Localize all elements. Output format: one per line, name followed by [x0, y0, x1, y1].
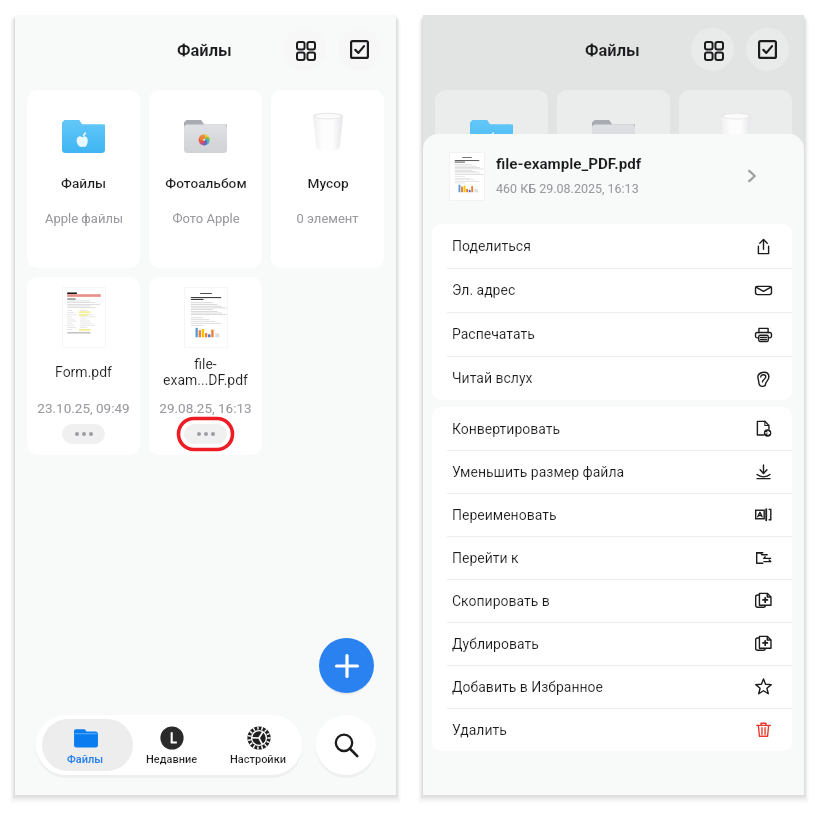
staticText: Эл. адрес: [452, 282, 516, 298]
button[interactable]: Добавить в Избранное: [432, 665, 792, 708]
button[interactable]: Поделиться: [432, 224, 792, 268]
staticText: Файлы: [67, 753, 104, 766]
staticText: 460 КБ 29.08.2025, 16:13: [496, 181, 639, 196]
button[interactable]: Дублировать: [432, 622, 792, 665]
staticText: Скопировать в: [452, 593, 550, 609]
button[interactable]: Конвертировать: [432, 407, 792, 450]
staticText: Фотоальбом: [165, 175, 247, 191]
staticText: Файлы: [177, 41, 232, 60]
button[interactable]: Select all: [338, 28, 381, 71]
staticText: Дублировать: [452, 636, 539, 652]
staticText: Мусор: [307, 175, 349, 191]
staticText: 29.08.25, 16:13: [159, 400, 252, 416]
button[interactable]: More options: [184, 424, 227, 444]
button[interactable]: Удалить: [432, 708, 792, 751]
button[interactable]: Grid view: [691, 28, 734, 71]
staticText: Переименовать: [452, 507, 557, 523]
button[interactable]: Grid view: [283, 28, 326, 71]
button[interactable]: Скопировать в: [432, 579, 792, 622]
staticText: 0 элемент: [296, 211, 359, 226]
staticText: Apple файлы: [45, 211, 123, 226]
button[interactable]: Add: [319, 638, 374, 693]
staticText: Читай вслух: [452, 370, 533, 386]
staticText: Конвертировать: [452, 421, 561, 437]
staticText: Form.pdf: [27, 364, 140, 380]
button[interactable]: Мусор: [271, 90, 384, 268]
staticText: Поделиться: [452, 238, 531, 254]
button[interactable]: Form.pdf: [27, 277, 140, 455]
button[interactable]: Недавние: [128, 719, 215, 771]
button[interactable]: Файлы: [27, 90, 140, 268]
button[interactable]: file- exam...DF.pdf: [149, 277, 262, 455]
button[interactable]: Фотоальбом: [149, 90, 262, 268]
button[interactable]: Эл. адрес: [432, 268, 792, 312]
staticText: Уменьшить размер файла: [452, 464, 625, 480]
button[interactable]: Читай вслух: [432, 356, 792, 400]
button[interactable]: Переименовать: [432, 493, 792, 536]
staticText: Недавние: [146, 753, 198, 766]
button[interactable]: Search: [316, 715, 376, 775]
button[interactable]: Перейти к: [432, 536, 792, 579]
staticText: Фото Apple: [172, 211, 240, 226]
button[interactable]: Уменьшить размер файла: [432, 450, 792, 493]
button[interactable]: More options: [62, 424, 105, 444]
button[interactable]: Настройки: [215, 719, 302, 771]
staticText: Файлы: [61, 175, 106, 191]
staticText: file- exam...DF.pdf: [149, 356, 262, 388]
staticText: Распечатать: [452, 326, 535, 342]
staticText: Удалить: [452, 722, 507, 738]
staticText: 23.10.25, 09:49: [37, 400, 130, 416]
staticText: Файлы: [585, 41, 640, 60]
button[interactable]: Select all: [746, 28, 789, 71]
staticText: Добавить в Избранное: [452, 679, 603, 695]
staticText: Перейти к: [452, 550, 519, 566]
staticText: file-example_PDF.pdf: [496, 155, 642, 173]
button[interactable]: Файлы: [42, 719, 128, 771]
button[interactable]: file-example_PDF.pdf: [450, 134, 788, 224]
staticText: Настройки: [230, 753, 287, 766]
button[interactable]: Распечатать: [432, 312, 792, 356]
